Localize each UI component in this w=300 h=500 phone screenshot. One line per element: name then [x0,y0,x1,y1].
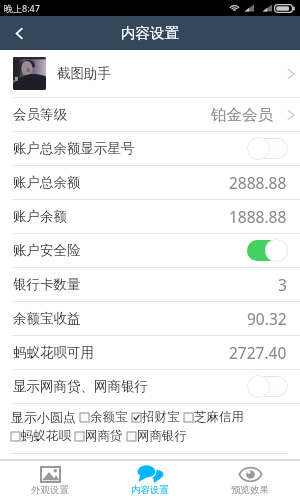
staticText: 截图助手 [57,65,111,82]
staticText: 余额宝收益 [13,310,81,327]
button[interactable]: 账户余额 [0,200,300,233]
staticText: 银行卡数量 [13,276,81,293]
staticText: 会员等级 [13,106,67,123]
button[interactable]: 截图助手 [0,50,300,97]
button[interactable]: 银行卡数量 [0,268,300,301]
button[interactable]: 会员等级 [0,98,300,131]
staticText: 1888.88 [229,206,287,227]
staticText: 2727.40 [229,342,287,363]
button[interactable]: 蚂蚁花呗 [11,428,71,444]
button[interactable]: 账户总余额显示星号 [0,132,300,165]
staticText: 招财宝 [142,409,180,425]
staticText: 账户总余额显示星号 [13,140,135,157]
staticText: 显示网商贷、网商银行 [13,378,148,395]
button[interactable]: 余额宝 [80,409,128,425]
staticText: 显示小圆点 [11,409,76,425]
staticText: 账户安全险 [13,242,81,259]
staticText: 90.32 [247,308,287,329]
staticText: 账户总余额 [13,174,81,191]
staticText: 铂金会员 [211,105,273,125]
button[interactable]: 网商贷 [75,428,123,444]
staticText: 3 [278,274,287,295]
button[interactable]: 账户安全险 [0,234,300,267]
staticText: 余额宝 [90,409,128,425]
staticText: 外观设置 [31,484,69,496]
button[interactable]: Switch off [247,375,288,398]
staticText: 网商贷 [85,428,123,444]
button[interactable]: Switch on [247,239,288,262]
button[interactable]: Back [0,16,38,50]
staticText: 预览效果 [231,484,269,496]
staticText: 蚂蚁花呗 [21,428,71,444]
staticText: 账户余额 [13,208,67,225]
staticText: 芝麻信用 [194,409,244,425]
button[interactable]: Switch off [247,137,288,160]
button[interactable]: 芝麻信用 [184,409,244,425]
staticText: 蚂蚁花呗可用 [13,344,94,361]
button[interactable]: 外观设置 [0,461,100,500]
staticText: 2888.88 [229,172,287,193]
staticText: 内容设置 [131,484,169,496]
button[interactable]: 网商银行 [127,428,187,444]
button[interactable]: 预览效果 [200,461,300,500]
button[interactable]: 显示网商贷、网商银行 [0,370,300,403]
button[interactable]: 账户总余额 [0,166,300,199]
button[interactable]: 内容设置 [100,461,200,500]
button[interactable]: 蚂蚁花呗可用 [0,336,300,369]
button[interactable]: 招财宝 [132,409,180,425]
staticText: 内容设置 [121,24,179,42]
staticText: 网商银行 [137,428,187,444]
staticText: 晚上8:47 [4,2,40,14]
button[interactable]: 余额宝收益 [0,302,300,335]
